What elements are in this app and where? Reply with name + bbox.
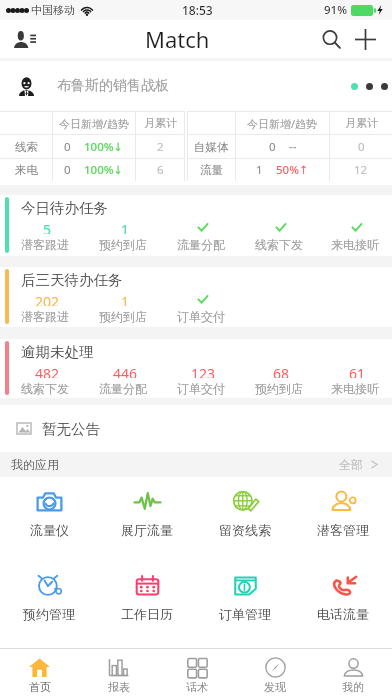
- staticText: 线索: [15, 140, 38, 154]
- staticText: 18:53: [182, 2, 213, 18]
- staticText: 逾期未处理: [21, 343, 94, 361]
- staticText: 预约到店: [99, 237, 147, 252]
- button[interactable]: 61: [318, 364, 392, 396]
- staticText: 中国移动: [31, 3, 75, 17]
- staticText: 展厅流量: [121, 522, 173, 538]
- staticText: 布鲁斯的销售战板: [57, 77, 169, 95]
- button[interactable]: 流量分配: [162, 220, 240, 252]
- staticText: 2: [157, 139, 164, 155]
- staticText: 482: [35, 364, 60, 378]
- staticText: 来电接听: [331, 381, 379, 396]
- staticText: 流量分配: [99, 381, 147, 396]
- button[interactable]: 1: [84, 292, 162, 324]
- staticText: 暂无公告: [42, 420, 100, 438]
- staticText: 线索下发: [21, 381, 69, 396]
- staticText: 0: [358, 139, 365, 155]
- staticText: 今日待办任务: [21, 199, 108, 217]
- staticText: 报表: [108, 680, 130, 694]
- staticText: 预约到店: [255, 381, 303, 396]
- staticText: 流量仪: [30, 522, 69, 538]
- staticText: 线索下发: [255, 237, 303, 252]
- staticText: Match: [145, 24, 210, 54]
- staticText: 0: [64, 139, 71, 155]
- staticText: 电话流量: [317, 606, 369, 622]
- staticText: 订单管理: [219, 606, 271, 622]
- staticText: 1: [256, 162, 263, 178]
- staticText: 91%: [324, 2, 347, 18]
- staticText: --: [289, 139, 297, 155]
- button[interactable]: 446: [84, 364, 162, 396]
- staticText: 68: [273, 364, 290, 378]
- button[interactable]: Contacts: [14, 24, 40, 54]
- staticText: 5: [43, 220, 52, 234]
- staticText: 50%↑: [276, 162, 309, 178]
- button[interactable]: 发现: [236, 649, 314, 696]
- button[interactable]: 1: [84, 220, 162, 252]
- staticText: 0: [269, 139, 276, 155]
- button[interactable]: 482: [6, 364, 84, 396]
- button[interactable]: 流量仪: [0, 486, 98, 558]
- staticText: 1: [121, 292, 130, 306]
- button[interactable]: 留资线索: [196, 486, 294, 558]
- button[interactable]: 工作日历: [98, 570, 196, 642]
- staticText: 我的: [342, 680, 364, 694]
- button[interactable]: 68: [240, 364, 318, 396]
- staticText: 月累计: [144, 116, 177, 130]
- staticText: 1: [121, 220, 130, 234]
- button[interactable]: 来电接听: [318, 220, 392, 252]
- staticText: 12: [354, 162, 368, 178]
- button[interactable]: 全部: [339, 457, 378, 472]
- staticText: 我的应用: [11, 457, 59, 472]
- staticText: 446: [113, 364, 138, 378]
- button[interactable]: 我的: [314, 649, 392, 696]
- staticText: 来电: [15, 163, 38, 177]
- staticText: 预约管理: [23, 606, 75, 622]
- staticText: 61: [349, 364, 366, 378]
- button[interactable]: 报表: [79, 649, 158, 696]
- button[interactable]: 展厅流量: [98, 486, 196, 558]
- staticText: 订单交付: [177, 381, 225, 396]
- staticText: 首页: [29, 680, 51, 694]
- staticText: 留资线索: [219, 522, 271, 538]
- staticText: 今日新增/趋势: [59, 116, 130, 131]
- staticText: 月累计: [345, 116, 378, 130]
- button[interactable]: 预约管理: [0, 570, 98, 642]
- staticText: 0: [64, 162, 71, 178]
- button[interactable]: 话术: [158, 649, 236, 696]
- button[interactable]: Add: [350, 24, 380, 54]
- staticText: 工作日历: [121, 606, 173, 622]
- button[interactable]: 123: [162, 364, 240, 396]
- button[interactable]: 线索下发: [240, 220, 318, 252]
- staticText: 订单交付: [177, 309, 225, 324]
- staticText: 流量: [200, 163, 223, 177]
- button[interactable]: 暂无公告: [0, 405, 392, 452]
- staticText: 6: [157, 162, 164, 178]
- button[interactable]: 202: [6, 292, 84, 324]
- button[interactable]: 电话流量: [294, 570, 392, 642]
- staticText: 123: [191, 364, 216, 378]
- staticText: 潜客跟进: [21, 237, 69, 252]
- staticText: 潜客管理: [317, 522, 369, 538]
- staticText: 话术: [186, 680, 208, 694]
- staticText: 预约到店: [99, 309, 147, 324]
- staticText: 202: [35, 292, 60, 306]
- button[interactable]: 5: [6, 220, 84, 252]
- staticText: 今日新增/趋势: [247, 116, 318, 131]
- staticText: 发现: [264, 680, 286, 694]
- button[interactable]: 订单管理: [196, 570, 294, 642]
- button[interactable]: 订单交付: [162, 292, 240, 324]
- staticText: 流量分配: [177, 237, 225, 252]
- staticText: 后三天待办任务: [21, 271, 123, 289]
- staticText: 全部: [339, 457, 363, 472]
- staticText: 潜客跟进: [21, 309, 69, 324]
- staticText: 100%↓: [84, 162, 124, 178]
- button[interactable]: Search: [316, 24, 346, 54]
- staticText: 来电接听: [331, 237, 379, 252]
- staticText: 自媒体: [194, 140, 229, 154]
- button[interactable]: 潜客管理: [294, 486, 392, 558]
- button[interactable]: 首页: [0, 649, 79, 696]
- staticText: 100%↓: [84, 139, 124, 155]
